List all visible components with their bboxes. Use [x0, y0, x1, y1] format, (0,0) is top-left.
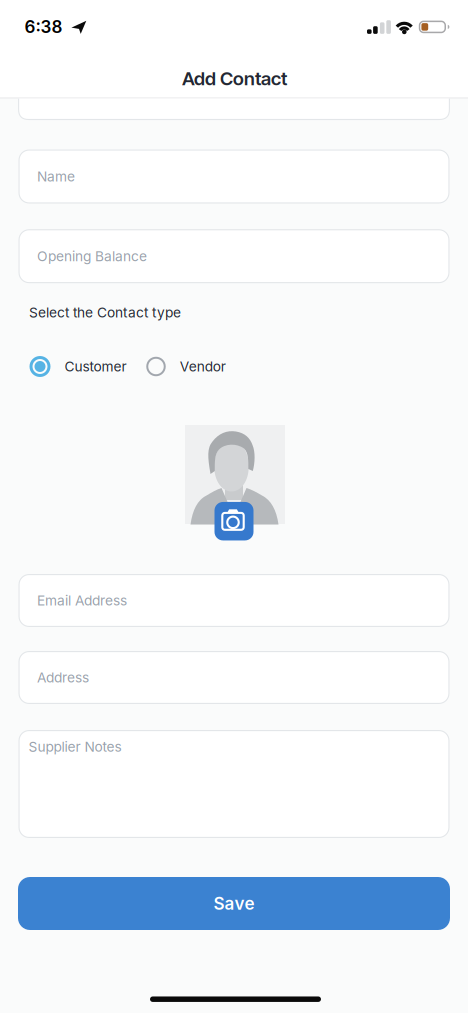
- staticText: Vendor: [180, 358, 226, 375]
- staticText: Supplier Notes: [28, 738, 121, 755]
- staticText: Name: [37, 168, 75, 185]
- staticText: Address: [37, 669, 89, 686]
- staticText: Save: [213, 893, 254, 914]
- staticText: Opening Balance: [37, 248, 147, 264]
- button[interactable]: Save: [18, 877, 450, 930]
- staticText: Select the Contact type: [29, 304, 181, 321]
- staticText: Email Address: [37, 592, 127, 609]
- button[interactable]: Add Photo: [214, 502, 253, 540]
- button[interactable]: Vendor: [146, 357, 226, 376]
- staticText: 6:38: [24, 17, 62, 37]
- button[interactable]: Customer: [29, 356, 126, 377]
- staticText: Add Contact: [182, 67, 287, 90]
- staticText: Customer: [64, 358, 126, 375]
